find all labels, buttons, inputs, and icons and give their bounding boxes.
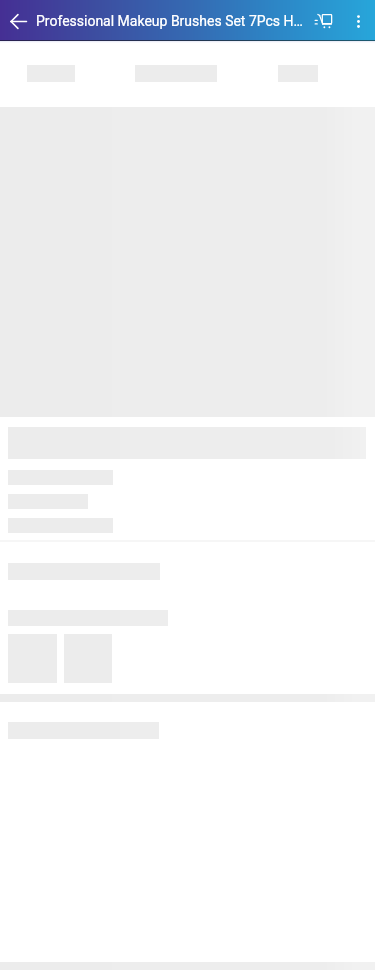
button[interactable]: More options	[342, 1, 375, 41]
button[interactable]: Navigate up	[0, 1, 36, 41]
staticText: Professional Makeup Brushes Set 7Pcs H…	[36, 13, 304, 29]
button[interactable]: Shopping cart	[304, 1, 342, 41]
